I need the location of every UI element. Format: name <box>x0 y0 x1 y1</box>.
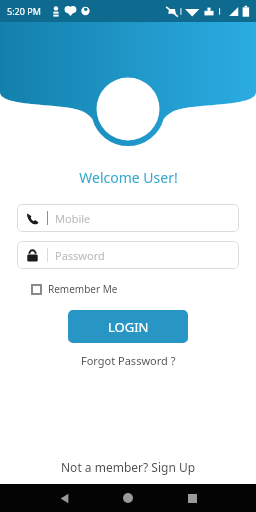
button[interactable]: Forgot Password ? <box>75 351 182 370</box>
button[interactable]: Password <box>17 241 239 269</box>
staticText: Mobile <box>55 211 91 226</box>
staticText: LOGIN <box>108 318 149 336</box>
button[interactable]: Recent apps <box>178 484 206 512</box>
button[interactable]: Remember Me <box>29 280 120 298</box>
staticText: Password <box>55 248 105 263</box>
button[interactable]: Back <box>50 484 78 512</box>
staticText: Remember Me <box>48 282 118 296</box>
staticText: Forgot Password ? <box>81 353 176 368</box>
staticText: 5:20 PM <box>7 5 41 17</box>
button[interactable]: LOGIN <box>68 310 188 343</box>
button[interactable]: Not a member? Sign Up <box>53 456 204 478</box>
button[interactable]: Home <box>114 484 142 512</box>
button[interactable]: Mobile <box>17 204 239 232</box>
staticText: Not a member? Sign Up <box>61 459 196 475</box>
staticText: Welcome User! <box>79 168 178 187</box>
